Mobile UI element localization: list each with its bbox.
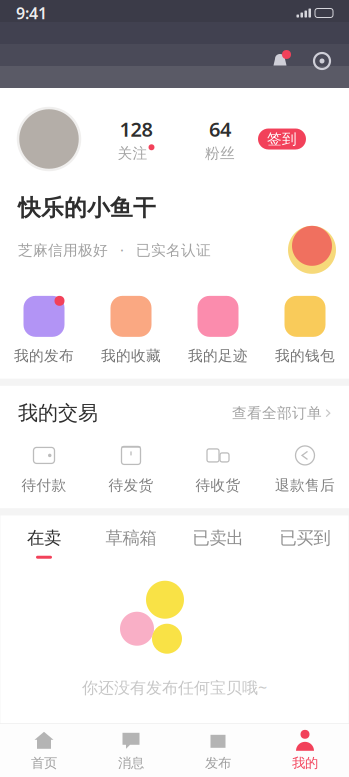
staticText: 草稿箱: [105, 527, 156, 549]
button[interactable]: 发布: [174, 730, 261, 771]
staticText: 粉丝: [205, 144, 235, 162]
staticText: 待收货: [195, 476, 240, 494]
button[interactable]: 128: [110, 116, 162, 162]
staticText: 在卖: [27, 527, 61, 549]
button[interactable]: 我的收藏: [87, 294, 174, 365]
staticText: 我的: [292, 755, 318, 771]
staticText: 已买到: [279, 527, 330, 549]
button[interactable]: 退款售后: [261, 443, 348, 494]
staticText: 退款售后: [275, 476, 335, 494]
staticText: 查看全部订单: [232, 404, 322, 422]
button[interactable]: 我的钱包: [261, 294, 348, 365]
staticText: 我的足迹: [188, 347, 248, 365]
button[interactable]: 64: [194, 116, 246, 162]
staticText: 64: [209, 116, 231, 142]
button[interactable]: 消息: [87, 730, 174, 771]
staticText: 已卖出: [192, 527, 243, 549]
staticText: 关注: [117, 144, 147, 162]
staticText: 我的交易: [18, 401, 98, 425]
button[interactable]: 我的足迹: [174, 294, 261, 365]
button[interactable]: Notifications: [269, 50, 291, 72]
button[interactable]: 我的发布: [0, 294, 87, 365]
button[interactable]: 首页: [0, 730, 87, 771]
staticText: 我的收藏: [101, 347, 161, 365]
staticText: 待付款: [21, 476, 66, 494]
staticText: 我的钱包: [275, 347, 335, 365]
button[interactable]: 待发货: [87, 443, 174, 494]
button[interactable]: 待收货: [174, 443, 261, 494]
staticText: 快乐的小鱼干: [18, 194, 156, 222]
staticText: 9:41: [16, 2, 47, 24]
staticText: 128: [119, 116, 152, 142]
button[interactable]: Level badge: [288, 226, 336, 274]
button[interactable]: 我的: [261, 730, 348, 771]
staticText: 待发货: [108, 476, 153, 494]
button[interactable]: 签到: [258, 128, 306, 149]
button[interactable]: 待付款: [0, 443, 87, 494]
staticText: 首页: [31, 755, 57, 771]
staticText: 你还没有发布任何宝贝哦~: [82, 677, 267, 698]
staticText: 我的发布: [14, 347, 74, 365]
button[interactable]: 查看全部订单: [232, 404, 331, 422]
button[interactable]: 草稿箱: [87, 527, 174, 559]
button[interactable]: Settings: [311, 50, 333, 72]
button[interactable]: 已买到: [261, 527, 348, 559]
button[interactable]: 在卖: [0, 527, 87, 559]
staticText: 芝麻信用极好 · 已实名认证: [18, 240, 211, 260]
staticText: 签到: [267, 130, 297, 148]
button[interactable]: 已卖出: [174, 527, 261, 559]
staticText: 消息: [118, 755, 144, 771]
staticText: 发布: [205, 755, 231, 771]
